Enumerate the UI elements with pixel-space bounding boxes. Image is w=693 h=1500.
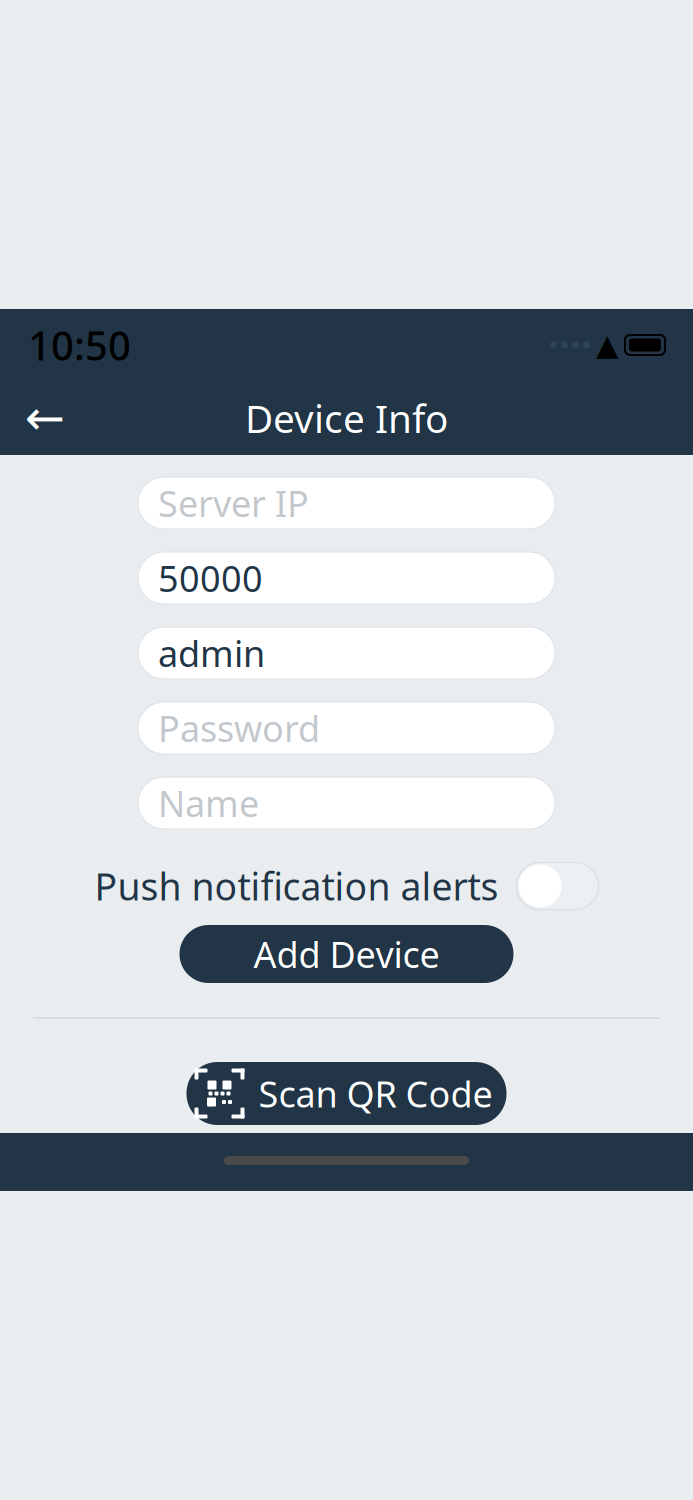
staticText: Name bbox=[158, 779, 259, 827]
staticText: Add Device bbox=[253, 930, 439, 978]
button[interactable]: Back bbox=[12, 385, 78, 451]
staticText: Password bbox=[158, 704, 320, 752]
button[interactable]: Add Device bbox=[179, 925, 513, 983]
button[interactable]: Push notification alerts bbox=[94, 861, 598, 911]
staticText: 50000 bbox=[158, 554, 263, 602]
staticText: Device Info bbox=[245, 392, 448, 444]
staticText: ▲ bbox=[596, 328, 619, 362]
staticText: ← bbox=[25, 391, 65, 445]
staticText: Push notification alerts bbox=[94, 861, 498, 911]
staticText: Scan QR Code bbox=[258, 1070, 492, 1117]
staticText: 10:50 bbox=[28, 318, 131, 371]
button[interactable]: Scan QR Code bbox=[186, 1062, 506, 1125]
staticText: admin bbox=[158, 629, 265, 677]
staticText: Server IP bbox=[158, 479, 309, 527]
